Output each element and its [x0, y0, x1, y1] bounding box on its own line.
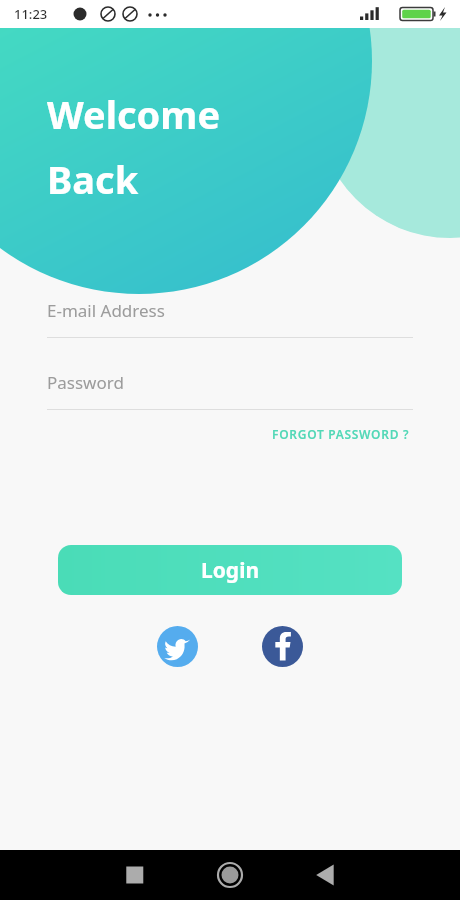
staticText: Password — [47, 371, 124, 394]
button[interactable]: FORGOT PASSWORD ? — [269, 421, 413, 447]
staticText: Login — [201, 556, 260, 585]
staticText: Back — [47, 153, 139, 205]
button[interactable]: Sign in with Facebook — [262, 626, 303, 667]
staticText: Welcome — [47, 88, 221, 140]
button[interactable]: Sign in with Twitter — [157, 626, 198, 667]
staticText: E-mail Address — [47, 299, 165, 322]
button[interactable]: Login — [58, 545, 402, 595]
button[interactable]: Password — [47, 371, 413, 410]
button[interactable]: E-mail Address — [47, 299, 413, 338]
staticText: 11:23 — [14, 5, 48, 23]
staticText: FORGOT PASSWORD ? — [272, 426, 410, 442]
